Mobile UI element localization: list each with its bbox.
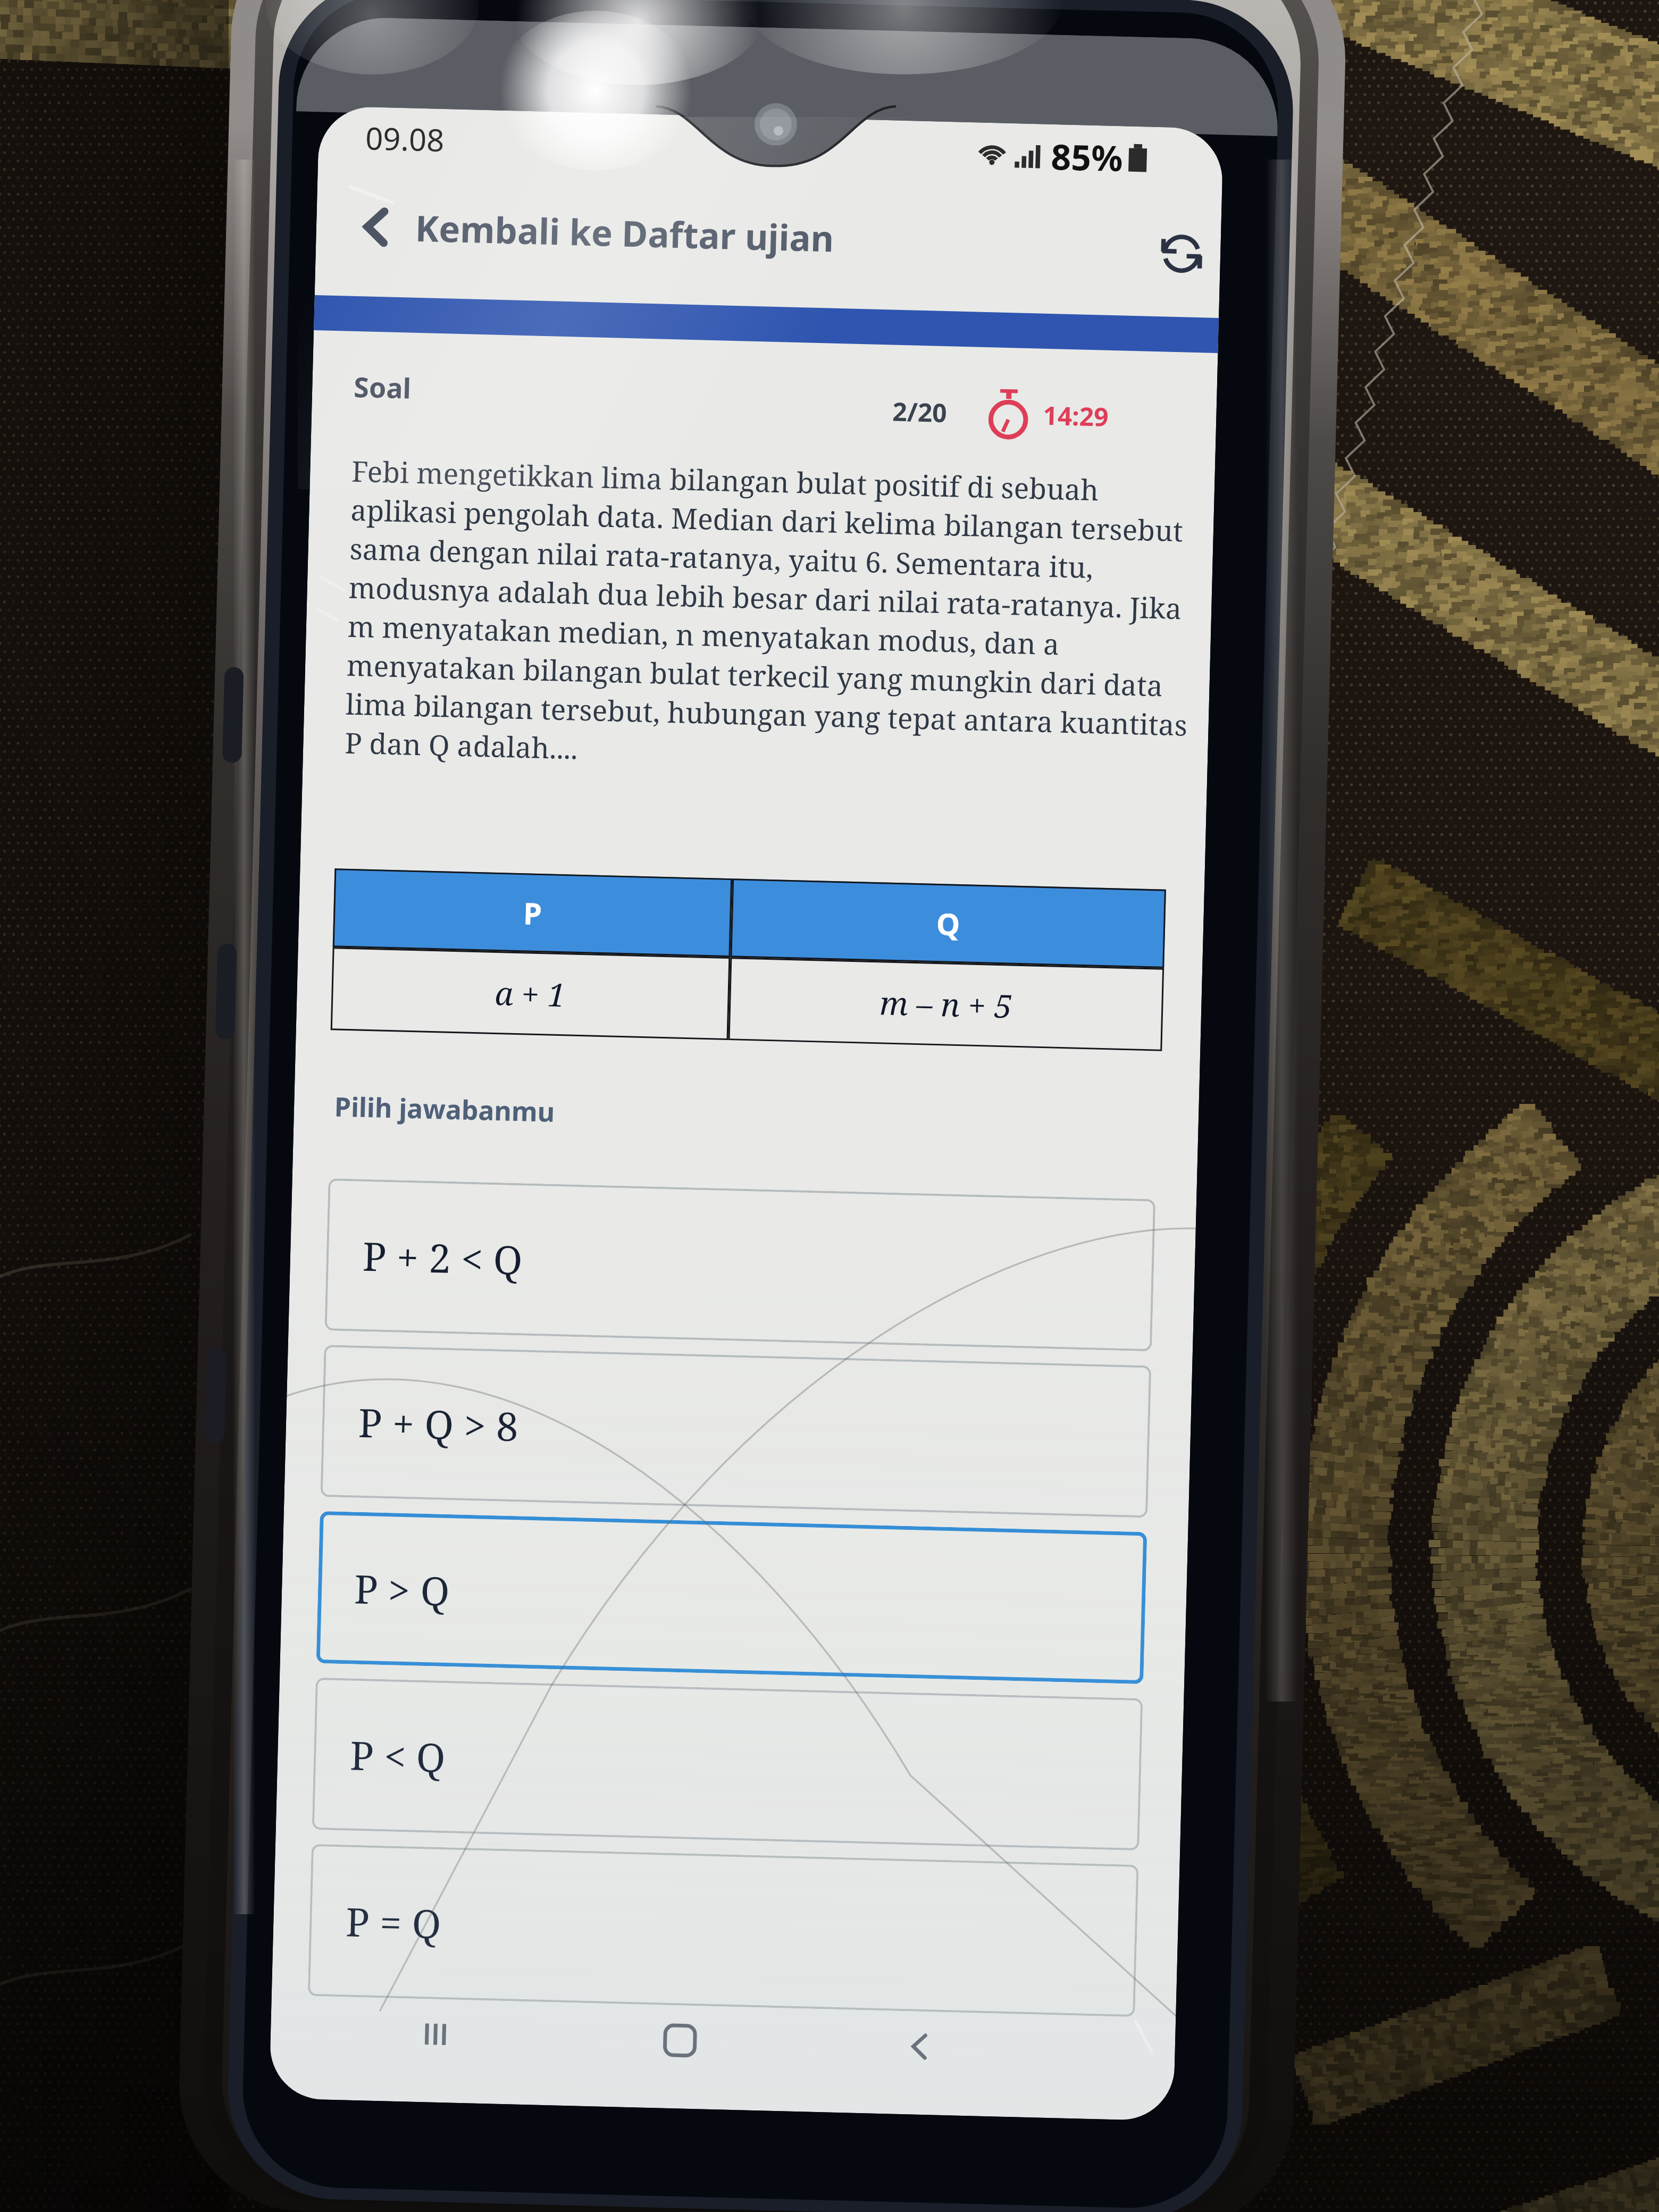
staticText: sama dengan nilai rata-ratanya, yaitu 6.… bbox=[349, 529, 1094, 587]
button[interactable]: P = Q bbox=[308, 1844, 1139, 2017]
button[interactable]: Back bbox=[860, 1997, 979, 2096]
staticText: Soal bbox=[353, 367, 412, 407]
staticText: Kembali ke Daftar ujian bbox=[415, 203, 835, 262]
staticText: P bbox=[523, 892, 543, 933]
staticText: Q bbox=[936, 903, 961, 944]
button[interactable]: Back bbox=[335, 186, 416, 268]
button[interactable]: Home bbox=[620, 1991, 740, 2090]
button[interactable]: P + Q > 8 bbox=[320, 1345, 1151, 1518]
staticText: P + 2 < Q bbox=[362, 1229, 523, 1286]
staticText: 09.08 bbox=[365, 117, 445, 161]
button[interactable]: P + 2 < Q bbox=[325, 1178, 1156, 1351]
staticText: P + Q > 8 bbox=[358, 1395, 519, 1453]
button[interactable]: Kembali ke Daftar ujian bbox=[414, 193, 835, 271]
staticText: Pilih jawabanmu bbox=[334, 1088, 556, 1130]
button[interactable]: P > Q bbox=[316, 1511, 1147, 1684]
staticText: a + 1 bbox=[494, 971, 567, 1016]
staticText: 85% bbox=[1050, 132, 1124, 181]
staticText: P dan Q adalah.... bbox=[344, 723, 579, 768]
staticText: aplikasi pengolah data. Median dari keli… bbox=[350, 490, 1184, 550]
staticText: m menyatakan median, n menyatakan modus,… bbox=[347, 607, 1060, 663]
staticText: P = Q bbox=[345, 1894, 442, 1950]
staticText: 2/20 bbox=[892, 394, 948, 430]
button[interactable]: P < Q bbox=[312, 1678, 1143, 1851]
staticText: lima bilangan tersebut, hubungan yang te… bbox=[345, 684, 1188, 744]
staticText: P < Q bbox=[349, 1728, 446, 1784]
staticText: m – n + 5 bbox=[879, 981, 1013, 1028]
staticText: menyatakan bilangan bulat terkecil yang … bbox=[346, 645, 1164, 705]
staticText: P > Q bbox=[354, 1561, 451, 1618]
button[interactable]: Refresh bbox=[1138, 213, 1221, 295]
button[interactable]: Recent apps bbox=[376, 1985, 495, 2084]
staticText: modusnya adalah dua lebih besar dari nil… bbox=[348, 568, 1182, 628]
staticText: 14:29 bbox=[1043, 398, 1109, 434]
staticText: Febi mengetikkan lima bilangan bulat pos… bbox=[351, 451, 1100, 509]
